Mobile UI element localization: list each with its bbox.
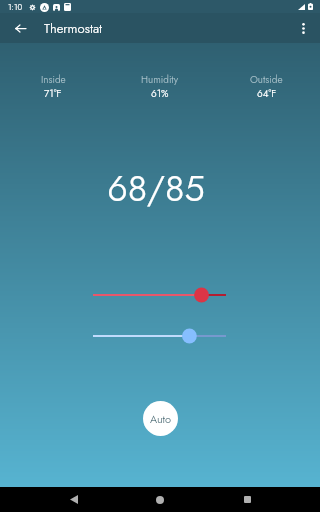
button[interactable]: More options: [290, 15, 316, 41]
staticText: 71°F: [44, 86, 62, 100]
staticText: Outside: [250, 72, 283, 86]
staticText: Thermostat: [44, 19, 103, 38]
button[interactable]: Heat set point: [93, 287, 226, 303]
button[interactable]: Back: [61, 487, 87, 512]
button[interactable]: Back: [9, 17, 31, 39]
staticText: 64°F: [257, 86, 277, 100]
staticText: Auto: [150, 411, 172, 427]
staticText: 61%: [151, 86, 169, 100]
staticText: 68/85: [107, 162, 205, 214]
button[interactable]: Auto: [143, 401, 178, 436]
button[interactable]: Home: [147, 487, 173, 512]
button[interactable]: Cool set point: [93, 328, 226, 344]
staticText: Humidity: [141, 72, 179, 86]
button[interactable]: Recents: [234, 487, 260, 512]
staticText: Inside: [41, 72, 66, 86]
staticText: 1:10: [8, 1, 23, 13]
